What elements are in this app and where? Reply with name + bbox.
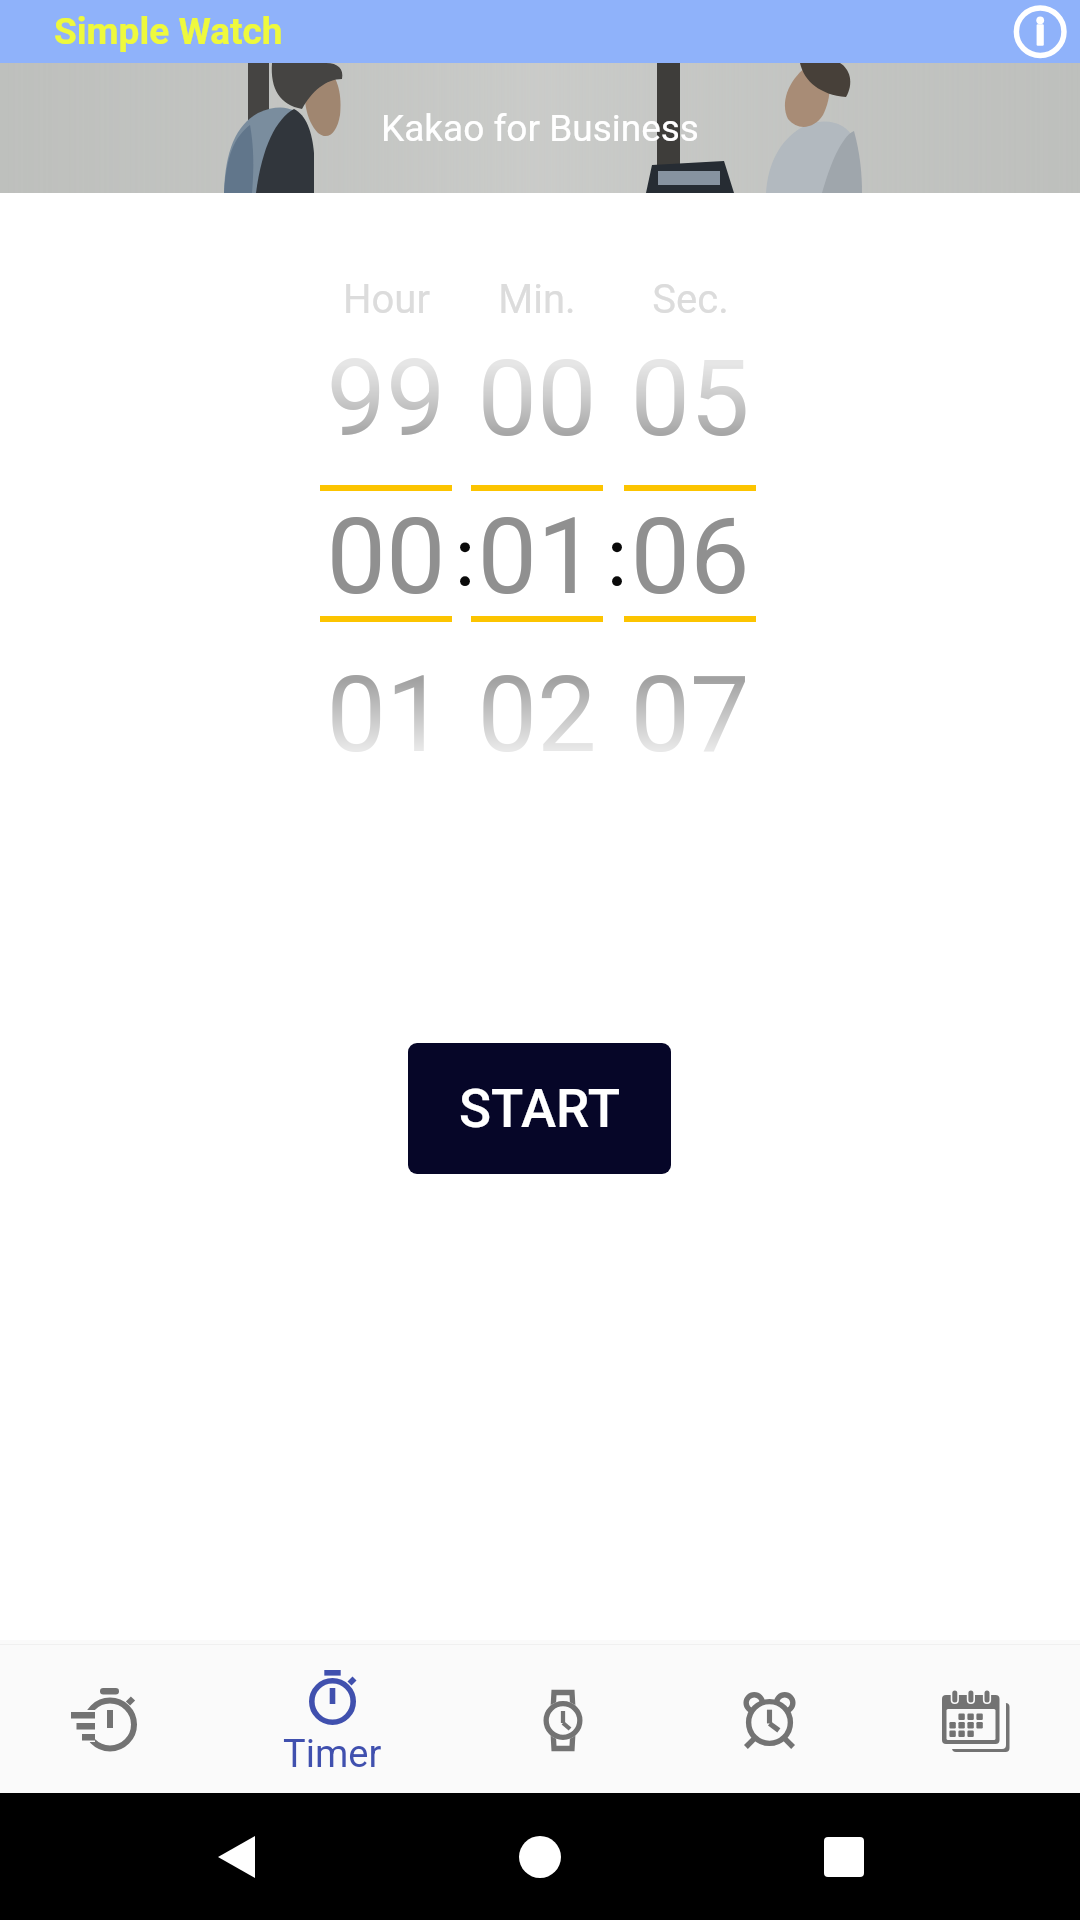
staticText: Timer <box>283 1732 382 1777</box>
button[interactable]: Kakao for Business advertisement <box>0 63 1080 193</box>
staticText: 00 <box>326 495 446 619</box>
button[interactable]: Second picker <box>624 329 756 785</box>
staticText: 01 <box>477 495 597 619</box>
button[interactable]: Calendar <box>866 1640 1080 1793</box>
staticText: 99 <box>326 337 446 461</box>
staticText: Sec. <box>652 276 729 323</box>
staticText: 07 <box>630 653 750 777</box>
staticText: 05 <box>630 337 750 461</box>
staticText: 02 <box>477 653 597 777</box>
staticText: 00 <box>477 337 597 461</box>
button[interactable]: Watch <box>455 1640 671 1793</box>
staticText: START <box>459 1078 620 1140</box>
staticText: Min. <box>498 276 576 323</box>
button[interactable]: Stopwatch <box>0 1640 211 1793</box>
button[interactable]: START <box>408 1043 671 1174</box>
button[interactable]: Minute picker <box>471 329 603 785</box>
staticText: Simple Watch <box>54 10 283 53</box>
staticText: 06 <box>630 495 750 619</box>
staticText: Kakao for Business <box>381 107 699 150</box>
button[interactable]: Alarm <box>661 1640 877 1793</box>
staticText: Hour <box>343 276 430 323</box>
button[interactable]: Info <box>1008 0 1072 63</box>
staticText: 01 <box>326 653 446 777</box>
button[interactable]: Timer <box>228 1640 437 1793</box>
button[interactable]: Hour picker <box>320 329 452 785</box>
